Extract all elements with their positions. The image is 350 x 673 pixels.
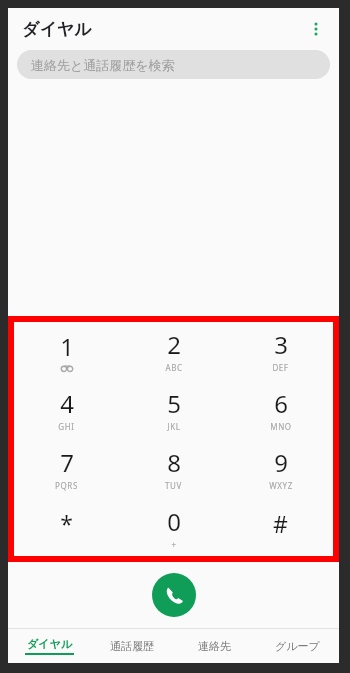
button[interactable]: More options [299, 12, 333, 46]
staticText: 4 [60, 387, 74, 420]
button[interactable]: 5 [120, 380, 227, 439]
staticText: 2 [167, 328, 181, 361]
staticText: 9 [274, 446, 288, 479]
button[interactable]: * [13, 498, 120, 557]
staticText: ABC [165, 362, 183, 373]
staticText: MNO [270, 421, 292, 432]
button[interactable]: ダイヤル [8, 629, 90, 663]
staticText: GHI [58, 421, 75, 432]
staticText: ダイヤル [22, 19, 92, 40]
staticText: 1 [60, 330, 74, 363]
staticText: 連絡先 [198, 639, 231, 653]
staticText: 7 [60, 446, 74, 479]
button[interactable]: 6 [227, 380, 334, 439]
button[interactable]: 8 [120, 439, 227, 498]
button[interactable]: 7 [13, 439, 120, 498]
staticText: # [273, 508, 288, 539]
staticText: 連絡先と通話履歴を検索 [31, 57, 175, 73]
staticText: 3 [274, 328, 288, 361]
staticText: WXYZ [269, 480, 293, 491]
button[interactable]: 1 [13, 321, 120, 380]
staticText: グループ [275, 639, 320, 653]
button[interactable]: グループ [256, 629, 339, 663]
staticText: ダイヤル [27, 637, 73, 651]
staticText: + [171, 539, 177, 550]
staticText: 8 [167, 446, 181, 479]
button[interactable]: 9 [227, 439, 334, 498]
button[interactable]: 連絡先と通話履歴を検索 [17, 50, 330, 79]
button[interactable]: 4 [13, 380, 120, 439]
staticText: TUV [165, 480, 182, 491]
staticText: 0 [167, 505, 181, 538]
button[interactable]: 連絡先 [173, 629, 256, 663]
staticText: PQRS [55, 480, 78, 491]
button[interactable]: 通話履歴 [90, 629, 173, 663]
button[interactable]: Call [152, 573, 196, 617]
button[interactable]: 3 [227, 321, 334, 380]
button[interactable]: 2 [120, 321, 227, 380]
staticText: 6 [274, 387, 288, 420]
staticText: JKL [167, 421, 181, 432]
staticText: 5 [167, 387, 181, 420]
staticText: * [60, 508, 73, 539]
button[interactable]: 0 [120, 498, 227, 557]
button[interactable]: # [227, 498, 334, 557]
staticText: 通話履歴 [110, 639, 154, 653]
staticText: DEF [272, 362, 289, 373]
